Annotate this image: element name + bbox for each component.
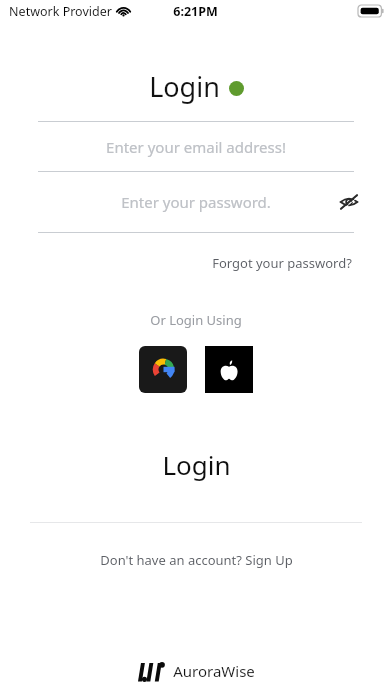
button[interactable]: Don't have an account? Sign Up bbox=[0, 547, 392, 573]
button[interactable]: Login bbox=[0, 441, 392, 487]
staticText: Enter your email address! bbox=[106, 137, 286, 157]
staticText: Login bbox=[162, 447, 231, 482]
button[interactable]: Show password bbox=[334, 187, 364, 217]
staticText: Login bbox=[149, 68, 220, 105]
staticText: Enter your password. bbox=[121, 192, 271, 212]
staticText: 6:21PM bbox=[173, 3, 218, 20]
staticText: Don't have an account? Sign Up bbox=[100, 551, 293, 569]
staticText: Network Provider bbox=[9, 3, 112, 20]
button[interactable]: Enter your email address! bbox=[0, 122, 392, 171]
button[interactable]: Sign in with Google bbox=[139, 346, 187, 393]
button[interactable]: Enter your password. bbox=[0, 172, 392, 232]
button[interactable]: Forgot your password? bbox=[210, 251, 354, 275]
staticText: Forgot your password? bbox=[212, 254, 352, 272]
button[interactable]: Sign in with Apple bbox=[205, 346, 253, 393]
staticText: AuroraWise bbox=[173, 661, 255, 681]
staticText: Or Login Using bbox=[150, 311, 242, 329]
